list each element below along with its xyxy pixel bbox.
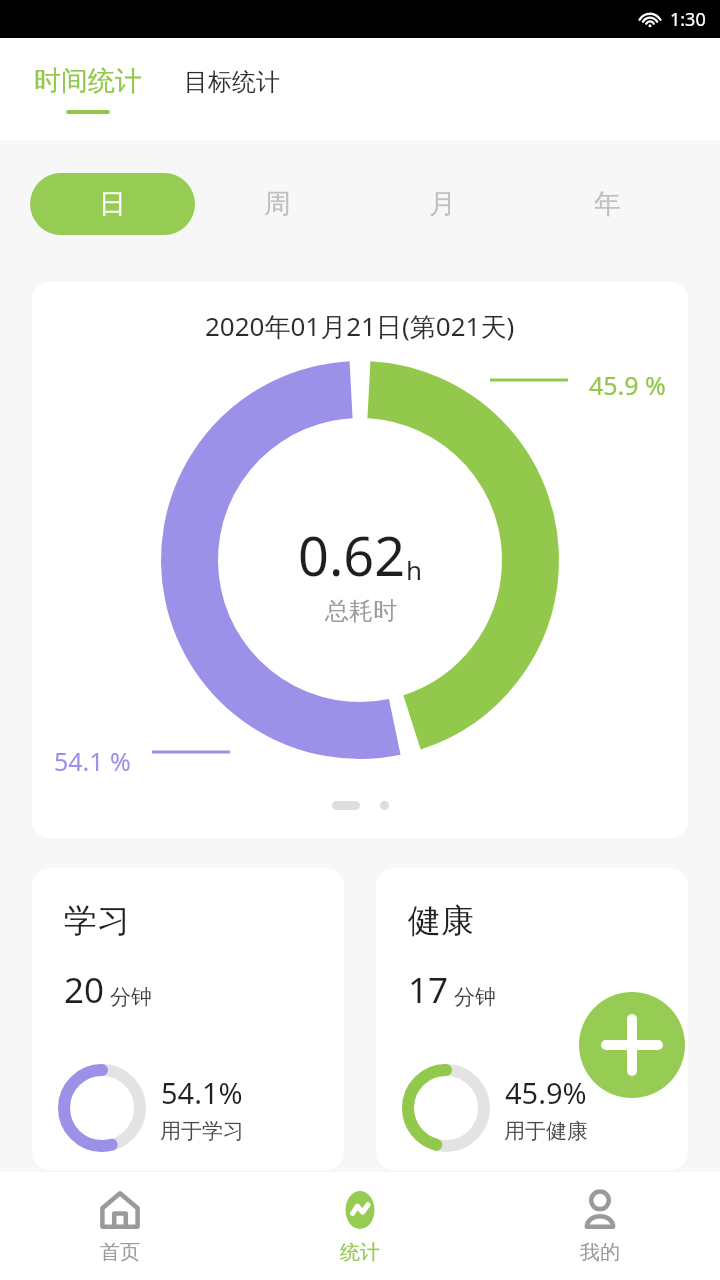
- staticText: 统计: [340, 1240, 380, 1265]
- button[interactable]: 月: [372, 173, 513, 235]
- staticText: 用于学习: [160, 1118, 244, 1144]
- staticText: 45.9%: [505, 1073, 587, 1112]
- staticText: 2020年01月21日(第021天): [205, 308, 515, 344]
- staticText: 月: [429, 187, 456, 221]
- staticText: 17: [408, 966, 449, 1014]
- staticText: 首页: [100, 1240, 140, 1265]
- staticText: 0.62: [298, 518, 406, 592]
- staticText: 时间统计: [34, 64, 142, 98]
- button[interactable]: 2020年01月21日(第021天): [32, 282, 688, 838]
- button[interactable]: 日: [30, 173, 195, 235]
- button[interactable]: 学习: [32, 868, 344, 1170]
- staticText: 年: [594, 187, 621, 221]
- staticText: 20: [64, 966, 105, 1014]
- button[interactable]: 统计: [240, 1172, 480, 1280]
- button[interactable]: 时间统计: [28, 64, 148, 114]
- staticText: h: [406, 552, 423, 587]
- button[interactable]: 周: [207, 173, 348, 235]
- button[interactable]: 首页: [0, 1172, 240, 1280]
- staticText: 总耗时: [325, 596, 397, 626]
- staticText: 45.9 %: [589, 368, 666, 402]
- button[interactable]: Add record: [579, 992, 685, 1098]
- staticText: 1:30: [670, 7, 706, 32]
- staticText: 分钟: [110, 984, 152, 1010]
- staticText: 学习: [64, 900, 130, 942]
- staticText: 目标统计: [184, 67, 280, 97]
- staticText: 日: [99, 187, 126, 221]
- staticText: 用于健康: [504, 1118, 588, 1144]
- button[interactable]: 健康: [376, 868, 688, 1170]
- button[interactable]: 目标统计: [178, 63, 286, 115]
- button[interactable]: 年: [537, 173, 678, 235]
- staticText: 54.1%: [161, 1073, 243, 1112]
- staticText: 健康: [408, 900, 474, 942]
- button[interactable]: 我的: [480, 1172, 720, 1280]
- staticText: 分钟: [454, 984, 496, 1010]
- staticText: 周: [264, 187, 291, 221]
- staticText: 我的: [580, 1240, 620, 1265]
- staticText: 54.1 %: [54, 744, 131, 778]
